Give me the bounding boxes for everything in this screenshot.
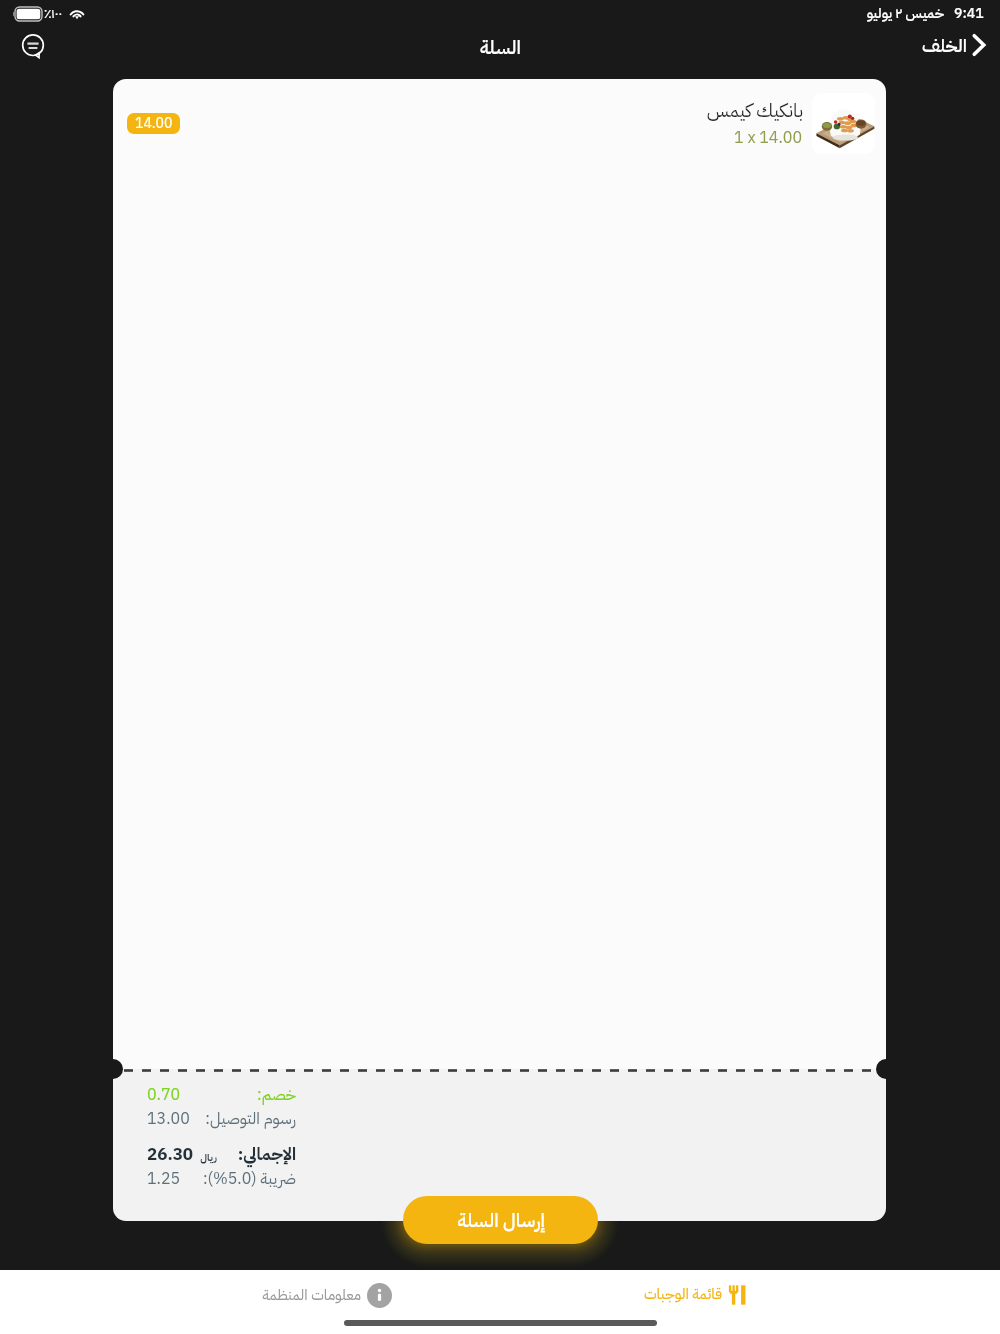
staticText: قائمة الوجبات — [643, 1283, 722, 1306]
staticText: خصم: — [257, 1083, 296, 1107]
staticText: 26.30 — [147, 1142, 194, 1167]
staticText: 9:41 — [954, 3, 984, 24]
staticText: بانكيك كيمس — [706, 96, 803, 125]
staticText: إرسال السلة — [457, 1206, 545, 1235]
staticText: الإجمالي: — [237, 1142, 296, 1167]
staticText: 14.00 — [135, 113, 173, 134]
staticText: 0.70 — [147, 1083, 181, 1107]
button[interactable]: Messages — [13, 26, 53, 66]
staticText: ريال — [200, 1150, 217, 1165]
staticText: السلة — [479, 33, 521, 62]
staticText: 13.00 — [147, 1107, 190, 1131]
staticText: معلومات المنظمة — [262, 1284, 361, 1307]
button[interactable]: معلومات المنظمة — [256, 1279, 398, 1312]
staticText: خميس ٢ يوليو — [866, 3, 944, 24]
staticText: 1.25 — [147, 1167, 181, 1191]
button[interactable]: 14.00 — [127, 113, 180, 134]
button[interactable]: قائمة الوجبات — [637, 1279, 755, 1310]
staticText: الخلف — [922, 32, 967, 59]
staticText: ٪١٠٠ — [44, 4, 63, 24]
button[interactable]: إرسال السلة — [403, 1196, 598, 1244]
staticText: ضريبة (5.0%): — [202, 1167, 296, 1191]
button[interactable]: الخلف — [920, 27, 988, 63]
staticText: 1 x 14.00 — [734, 126, 803, 150]
staticText: رسوم التوصيل: — [205, 1107, 296, 1131]
